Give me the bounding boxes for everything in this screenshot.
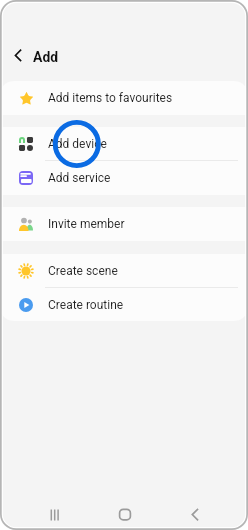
staticText: Add	[33, 49, 59, 65]
button[interactable]: Back	[179, 498, 211, 530]
button[interactable]: Add service	[0, 161, 248, 195]
button[interactable]: Create routine	[0, 288, 248, 321]
staticText: Add device	[48, 137, 107, 151]
button[interactable]: Home	[109, 498, 141, 530]
staticText: Create scene	[48, 264, 118, 278]
button[interactable]: Recents	[39, 498, 71, 530]
button[interactable]: Create scene	[0, 254, 248, 287]
staticText: Invite member	[48, 217, 125, 231]
button[interactable]: Back	[6, 42, 30, 66]
staticText: Add service	[48, 171, 111, 185]
staticText: Add items to favourites	[48, 91, 173, 105]
staticText: Create routine	[48, 298, 124, 312]
button[interactable]: Add items to favourites	[0, 81, 248, 115]
button[interactable]: Add device	[0, 127, 248, 160]
button[interactable]: Invite member	[0, 207, 248, 241]
